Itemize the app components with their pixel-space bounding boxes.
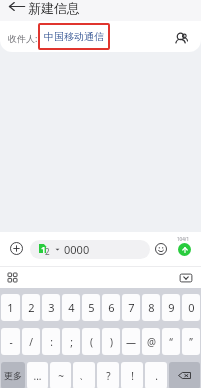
button[interactable]: ) xyxy=(102,328,120,355)
staticText: 7 xyxy=(128,300,135,315)
staticText: - xyxy=(9,335,13,349)
button[interactable]: Add attachment xyxy=(6,238,27,259)
button[interactable]: “ xyxy=(162,328,180,355)
button[interactable]: @ xyxy=(142,328,160,355)
button[interactable]: - xyxy=(1,328,20,355)
staticText: ... xyxy=(33,369,42,383)
staticText: 9 xyxy=(168,300,175,315)
button[interactable]: 7 xyxy=(122,294,140,321)
staticText: 新建信息 xyxy=(28,0,80,16)
staticText: — xyxy=(126,335,136,349)
staticText: 8 xyxy=(148,300,155,315)
button[interactable]: 8 xyxy=(142,294,160,321)
button[interactable]: 中国移动通信 xyxy=(38,23,110,50)
button[interactable]: 6 xyxy=(102,294,120,321)
staticText: ? xyxy=(106,369,111,383)
staticText: / xyxy=(29,335,33,349)
staticText: 0 xyxy=(188,300,195,315)
staticText: 4 xyxy=(68,300,75,315)
staticText: 2 xyxy=(28,300,35,315)
button[interactable]: 4 xyxy=(62,294,80,321)
button[interactable]: 、 xyxy=(73,362,95,388)
button[interactable]: Add recipient xyxy=(172,28,192,48)
button[interactable]: ? xyxy=(97,362,119,388)
staticText: 3 xyxy=(48,300,55,315)
button[interactable]: ... xyxy=(27,362,48,388)
staticText: . xyxy=(155,369,158,383)
staticText: “ xyxy=(169,335,173,349)
staticText: ( xyxy=(90,335,93,349)
staticText: 6 xyxy=(108,300,115,315)
button[interactable]: 更多 xyxy=(1,362,25,388)
staticText: 收件人: xyxy=(8,32,38,44)
staticText: ~ xyxy=(58,369,64,383)
staticText: ” xyxy=(189,335,193,349)
staticText: 1 xyxy=(7,300,14,315)
button[interactable]: 1 xyxy=(1,294,20,321)
button[interactable]: 1 xyxy=(30,240,150,259)
button[interactable]: 0 xyxy=(182,294,200,321)
button[interactable]: Send xyxy=(178,243,191,256)
staticText: 0000 xyxy=(64,242,90,257)
button[interactable]: 9 xyxy=(162,294,180,321)
staticText: : xyxy=(50,335,53,349)
button[interactable]: ! xyxy=(121,362,143,388)
button[interactable]: Backspace xyxy=(169,362,200,388)
button[interactable]: . xyxy=(145,362,167,388)
button[interactable]: ” xyxy=(182,328,200,355)
staticText: 2 xyxy=(45,246,50,257)
staticText: 更多 xyxy=(4,370,22,381)
button[interactable]: : xyxy=(42,328,60,355)
button[interactable]: ; xyxy=(62,328,80,355)
staticText: ! xyxy=(131,369,134,383)
staticText: 、 xyxy=(79,369,89,382)
button[interactable]: ~ xyxy=(50,362,71,388)
staticText: 5 xyxy=(88,300,95,315)
button[interactable]: ( xyxy=(82,328,100,355)
staticText: 1 xyxy=(41,244,46,255)
button[interactable]: 2 xyxy=(22,294,40,321)
button[interactable]: More options xyxy=(3,268,22,287)
button[interactable]: Hide keyboard xyxy=(176,268,196,288)
button[interactable]: 3 xyxy=(42,294,60,321)
staticText: 104/1 xyxy=(177,236,189,242)
button[interactable]: / xyxy=(22,328,40,355)
button[interactable]: Back xyxy=(6,0,27,17)
staticText: ; xyxy=(70,335,73,349)
button[interactable]: 5 xyxy=(82,294,100,321)
staticText: @ xyxy=(147,335,156,349)
staticText: 中国移动通信 xyxy=(44,30,104,43)
button[interactable]: — xyxy=(122,328,140,355)
button[interactable]: Emoji xyxy=(151,239,171,259)
staticText: ) xyxy=(110,335,113,349)
